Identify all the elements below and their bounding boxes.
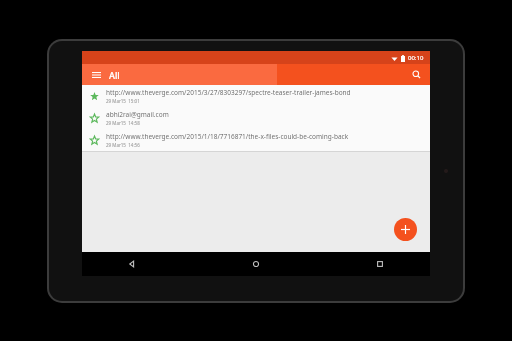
staticText: 29 Mar15 14:58 — [106, 120, 140, 126]
staticText: abhi2rai@gmail.com — [106, 110, 169, 119]
staticText: 29 Mar15 15:01 — [106, 98, 140, 104]
button[interactable]: Home — [246, 254, 266, 274]
button[interactable]: Search — [409, 67, 424, 82]
staticText: http://www.theverge.com/2015/1/18/771687… — [106, 132, 349, 141]
button[interactable]: Back — [122, 254, 142, 274]
button[interactable]: Star — [82, 107, 430, 129]
button[interactable]: Open navigation drawer — [89, 67, 104, 82]
staticText: All — [109, 69, 120, 81]
button[interactable]: Recent apps — [370, 254, 390, 274]
button[interactable]: Star — [87, 133, 101, 147]
button[interactable]: Star — [82, 129, 430, 151]
staticText: 29 Mar15 14:56 — [106, 142, 140, 148]
staticText: 00:10 — [408, 54, 424, 62]
button[interactable]: Unstar — [82, 85, 430, 107]
button[interactable]: Star — [87, 111, 101, 125]
staticText: http://www.theverge.com/2015/3/27/830329… — [106, 88, 351, 97]
button[interactable]: Add — [394, 218, 417, 241]
button[interactable]: Unstar — [87, 89, 101, 103]
